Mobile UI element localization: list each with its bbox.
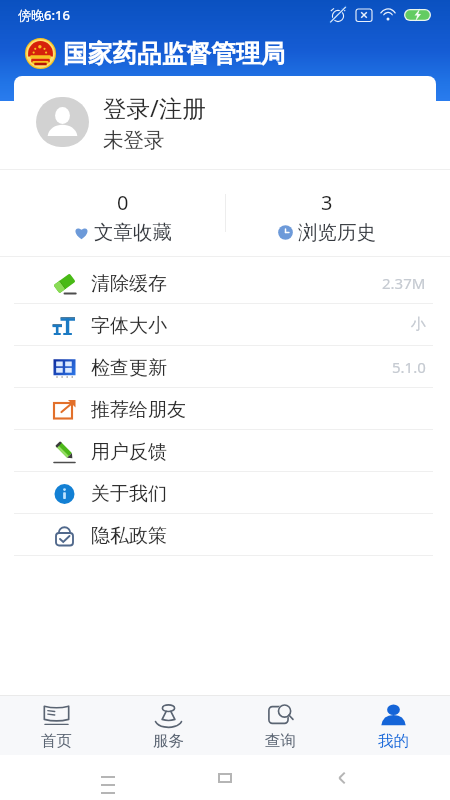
button[interactable]: 查询 (224, 696, 337, 755)
staticText: 3 (321, 189, 333, 216)
staticText: 清除缓存 (91, 272, 167, 296)
button[interactable]: 3 (225, 170, 429, 245)
staticText: 5.1.0 (392, 357, 426, 377)
button[interactable]: 字体大小 (0, 304, 450, 345)
button[interactable]: 清除缓存 (0, 262, 450, 303)
staticText: 用户反馈 (91, 440, 167, 464)
button[interactable]: 隐私政策 (0, 514, 450, 555)
staticText: 国家药品监督管理局 (63, 38, 286, 69)
staticText: 未登录 (103, 127, 165, 153)
staticText: 字体大小 (91, 314, 167, 338)
staticText: 关于我们 (91, 482, 167, 506)
button[interactable]: 首页 (0, 696, 112, 755)
staticText: 浏览历史 (298, 220, 376, 245)
button[interactable]: 我的 (337, 696, 450, 755)
staticText: 登录/注册 (103, 92, 206, 124)
staticText: 首页 (41, 731, 72, 751)
staticText: 检查更新 (91, 356, 167, 380)
staticText: 推荐给朋友 (91, 398, 186, 422)
staticText: 我的 (378, 731, 409, 751)
button[interactable]: 关于我们 (0, 472, 450, 513)
button[interactable]: 服务 (112, 696, 224, 755)
staticText: 查询 (265, 731, 296, 751)
button[interactable]: 登录/注册 (14, 76, 436, 168)
button[interactable]: 推荐给朋友 (0, 388, 450, 429)
staticText: 小 (411, 315, 426, 334)
staticText: 服务 (153, 731, 184, 751)
staticText: 文章收藏 (94, 220, 172, 245)
staticText: 0 (117, 189, 129, 216)
staticText: 傍晚6:16 (18, 6, 70, 24)
staticText: 2.37M (382, 273, 426, 293)
button[interactable]: 用户反馈 (0, 430, 450, 471)
staticText: 隐私政策 (91, 524, 167, 548)
button[interactable]: 检查更新 (0, 346, 450, 387)
button[interactable]: 0 (21, 170, 225, 245)
